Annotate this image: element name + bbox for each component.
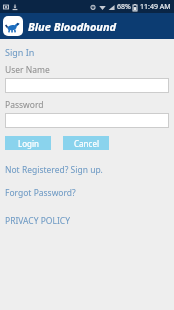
staticText: Forgot Password? <box>5 187 76 199</box>
button[interactable]: Login <box>5 136 51 150</box>
button[interactable]: PRIVACY POLICY <box>5 215 71 227</box>
staticText: User Name <box>5 64 50 76</box>
staticText: Blue Bloodhound <box>28 19 117 34</box>
staticText: Login <box>18 138 39 149</box>
button[interactable]: Forgot Password? <box>5 187 76 199</box>
button[interactable]: Cancel <box>63 136 109 150</box>
staticText: 68% <box>117 2 131 12</box>
staticText: Not Registered? Sign up. <box>5 164 103 176</box>
staticText: PRIVACY POLICY <box>5 215 71 227</box>
staticText: Sign In <box>5 46 35 58</box>
button[interactable]: Sign In <box>5 46 35 58</box>
staticText: Cancel <box>74 138 99 149</box>
button[interactable]: Text input <box>5 78 169 93</box>
staticText: 11:49 AM <box>140 2 171 12</box>
button[interactable]: Text input <box>5 113 169 128</box>
staticText: Password <box>5 99 44 111</box>
button[interactable]: Not Registered? Sign up. <box>5 164 103 176</box>
other: Blue Bloodhound logo <box>3 16 23 36</box>
